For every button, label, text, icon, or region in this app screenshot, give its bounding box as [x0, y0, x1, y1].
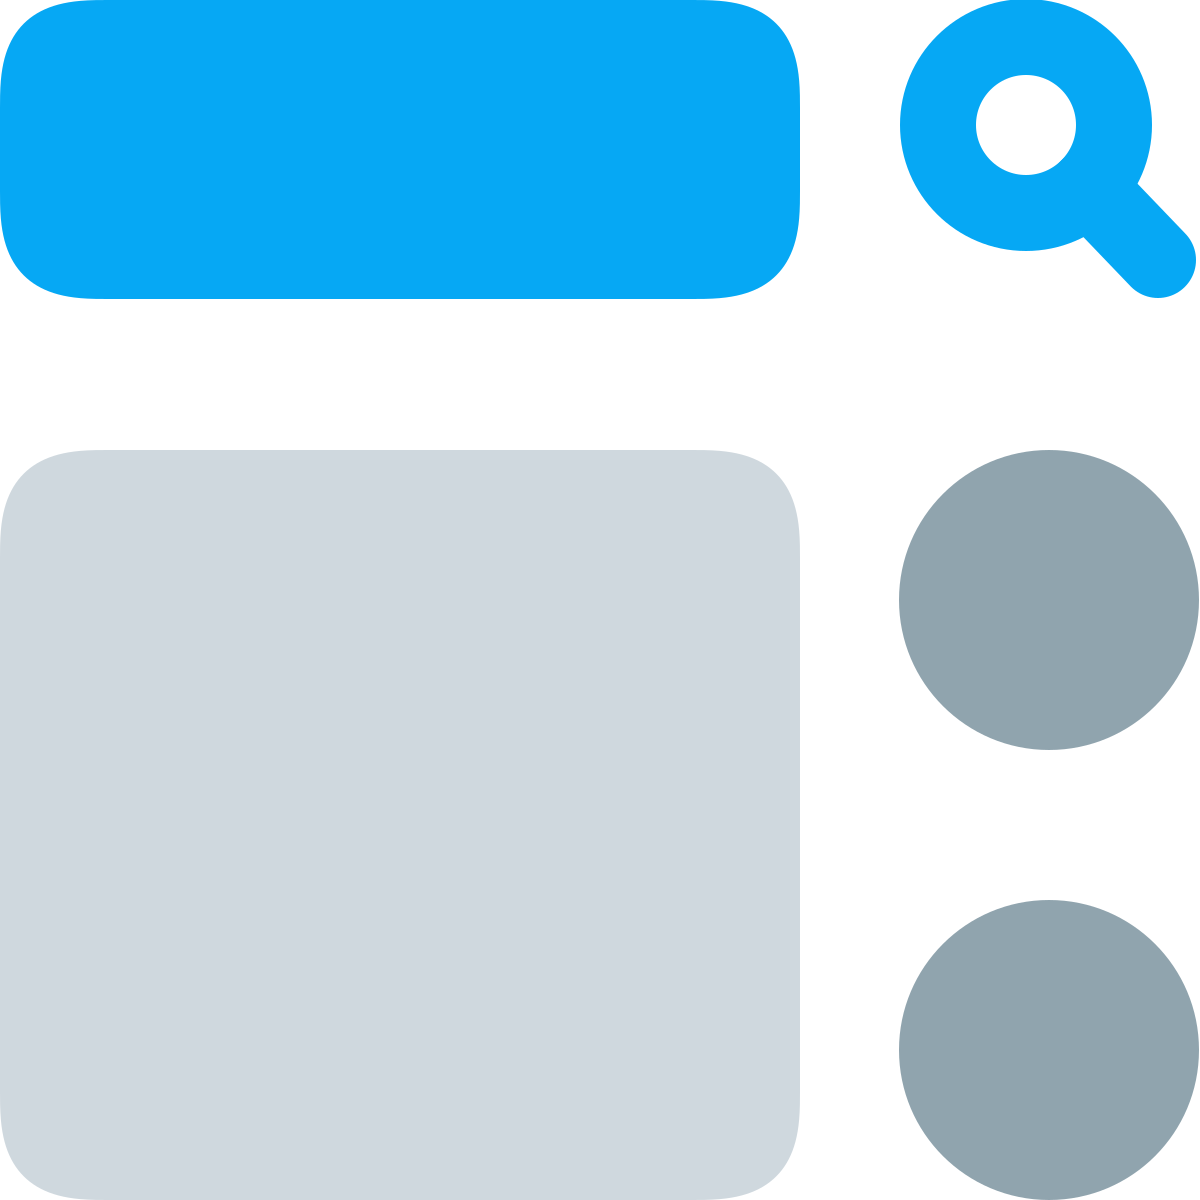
button[interactable]: Item [899, 900, 1199, 1200]
button[interactable] [0, 0, 800, 299]
button[interactable]: Search [876, 0, 1200, 320]
button[interactable] [0, 450, 800, 1200]
button[interactable]: Item [899, 450, 1199, 750]
